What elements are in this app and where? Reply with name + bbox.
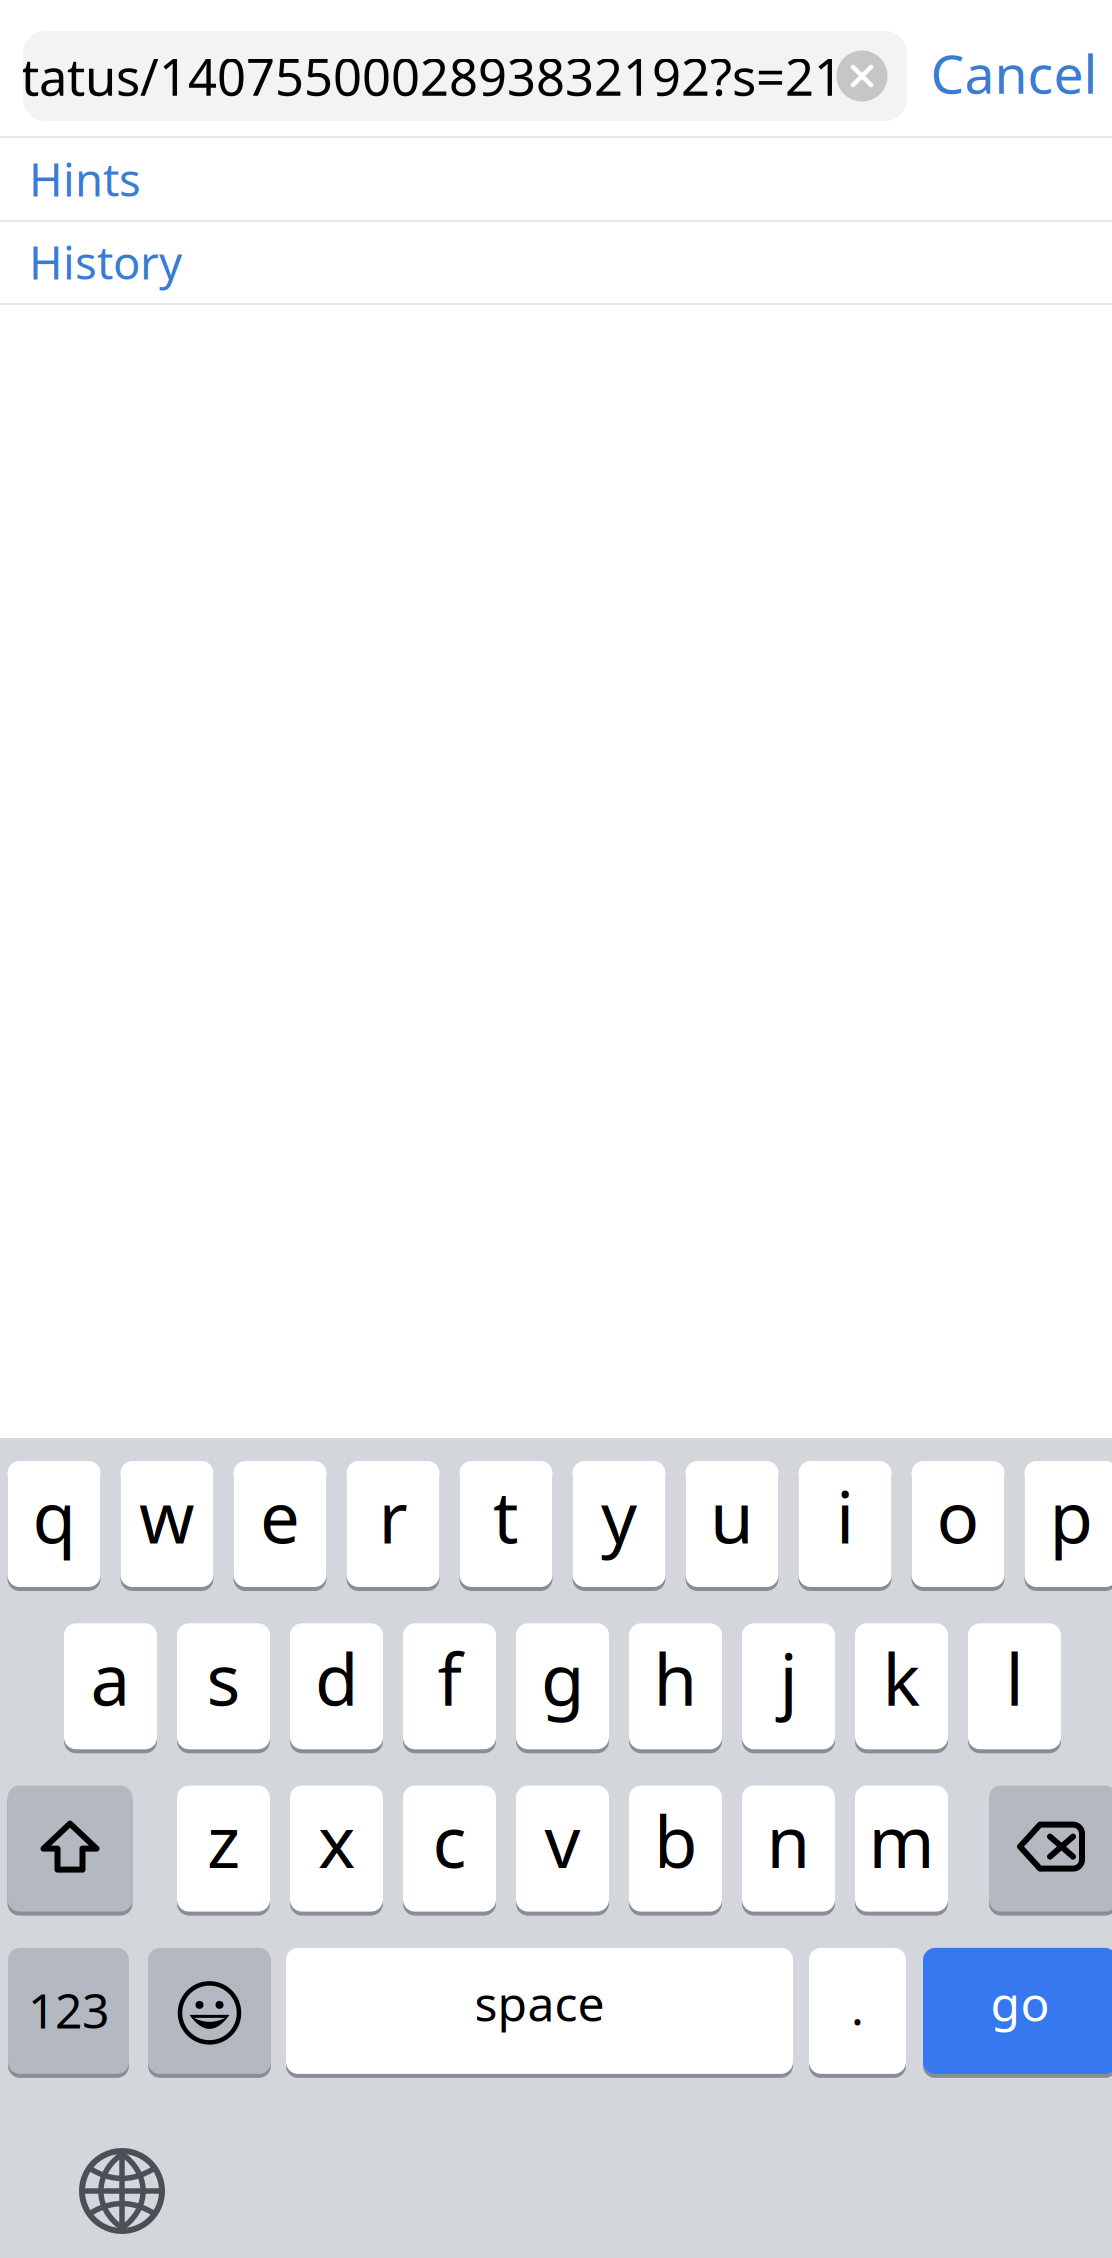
staticText: z (207, 1794, 240, 1887)
staticText: v (544, 1794, 580, 1887)
button[interactable]: l (968, 1621, 1061, 1751)
button[interactable]: Emoji (148, 1946, 271, 2076)
button[interactable]: m (855, 1784, 948, 1914)
button[interactable]: b (629, 1784, 722, 1914)
staticText: l (1005, 1631, 1023, 1725)
staticText: a (90, 1631, 130, 1725)
button[interactable]: c (403, 1784, 496, 1914)
button[interactable]: Clear text (830, 44, 894, 108)
staticText: m (868, 1794, 934, 1887)
staticText: g (541, 1631, 584, 1725)
button[interactable]: a (64, 1621, 157, 1751)
staticText: e (260, 1469, 300, 1563)
button[interactable]: . (809, 1946, 906, 2076)
staticText: w (139, 1469, 195, 1563)
staticText: f (437, 1631, 461, 1725)
staticText: x (318, 1794, 355, 1887)
staticText: Cancel (930, 38, 1097, 108)
button[interactable]: u (685, 1459, 778, 1589)
button[interactable]: space (286, 1946, 793, 2076)
button[interactable]: go (923, 1946, 1112, 2076)
staticText: h (653, 1631, 697, 1725)
button[interactable]: Hints (0, 138, 1112, 220)
button[interactable]: p (1024, 1459, 1112, 1589)
staticText: p (1049, 1469, 1092, 1563)
button[interactable]: Shift (7, 1784, 132, 1914)
staticText: . (851, 1975, 864, 2039)
button[interactable]: r (346, 1459, 439, 1589)
staticText: n (766, 1794, 810, 1887)
button[interactable]: d (290, 1621, 383, 1751)
button[interactable]: e (233, 1459, 326, 1589)
button[interactable]: Delete (989, 1784, 1112, 1914)
button[interactable]: z (177, 1784, 270, 1914)
staticText: 123 (28, 1978, 109, 2042)
button[interactable]: Next keyboard (67, 2136, 177, 2246)
button[interactable]: 123 (8, 1946, 129, 2076)
staticText: space (474, 1971, 604, 2035)
button[interactable]: y (572, 1459, 665, 1589)
staticText: d (315, 1631, 358, 1725)
staticText: History (29, 232, 182, 292)
staticText: r (378, 1469, 407, 1563)
staticText: t (493, 1469, 519, 1563)
staticText: o (936, 1469, 979, 1563)
staticText: u (710, 1469, 754, 1563)
staticText: s (206, 1631, 240, 1725)
staticText: k (882, 1631, 920, 1725)
button[interactable]: s (177, 1621, 270, 1751)
button[interactable]: f (403, 1621, 496, 1751)
button[interactable]: h (629, 1621, 722, 1751)
staticText: q (32, 1469, 75, 1563)
staticText: i (836, 1469, 854, 1563)
staticText: y (601, 1469, 637, 1563)
button[interactable]: t (459, 1459, 552, 1589)
button[interactable]: Cancel (914, 13, 1112, 133)
button[interactable]: i (798, 1459, 891, 1589)
button[interactable]: g (516, 1621, 609, 1751)
button[interactable]: o (911, 1459, 1004, 1589)
button[interactable]: x (290, 1784, 383, 1914)
button[interactable]: j (742, 1621, 835, 1751)
staticText: status/1407550002893832192?s=21 (0, 42, 843, 110)
staticText: Hints (29, 149, 141, 209)
staticText: j (779, 1631, 797, 1725)
button[interactable]: History (0, 221, 1112, 303)
button[interactable]: w (120, 1459, 213, 1589)
button[interactable]: k (855, 1621, 948, 1751)
staticText: b (654, 1794, 697, 1887)
button[interactable]: n (742, 1784, 835, 1914)
staticText: go (990, 1971, 1049, 2035)
button[interactable]: q (7, 1459, 100, 1589)
staticText: c (432, 1794, 466, 1887)
button[interactable]: v (516, 1784, 609, 1914)
